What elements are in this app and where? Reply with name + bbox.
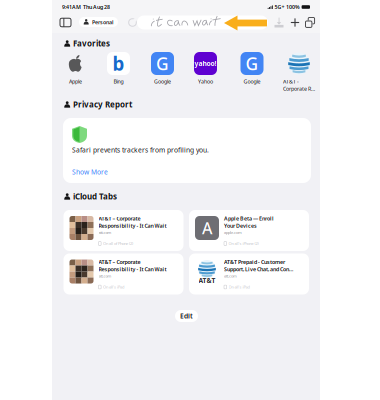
- staticText: apple.com: [224, 230, 242, 235]
- staticText: att.com: [98, 230, 111, 235]
- button[interactable]: New Tab: [290, 17, 300, 27]
- staticText: iCloud Tabs: [73, 191, 117, 202]
- button[interactable]: Show More: [72, 167, 112, 176]
- staticText: Google: [154, 78, 171, 85]
- button[interactable]: Show Sidebar: [59, 17, 72, 28]
- staticText: G: [156, 52, 169, 75]
- staticText: Favorites: [73, 38, 110, 49]
- staticText: Privacy Report: [73, 99, 132, 110]
- button[interactable]: Downloads: [274, 17, 283, 27]
- button[interactable]: Edit: [175, 310, 198, 322]
- staticText: On all of Phone (2): [103, 241, 133, 246]
- button[interactable]: Reload: [128, 18, 137, 27]
- staticText: G: [245, 52, 258, 75]
- staticText: On all's iPad: [229, 284, 250, 290]
- staticText: att.com: [224, 273, 237, 279]
- staticText: On all's iPhone (2): [229, 241, 259, 246]
- button[interactable]: G: [235, 51, 269, 91]
- staticText: b: [112, 51, 124, 76]
- staticText: Edit: [180, 312, 193, 320]
- button[interactable]: AT&T – Corporate Responsibility - It Can…: [63, 210, 183, 251]
- button[interactable]: AT&T – Corporate Responsibility - It Can…: [63, 253, 183, 294]
- button[interactable]: A: [189, 210, 309, 251]
- button[interactable]: AT&T - Corporate R…: [282, 51, 316, 91]
- button[interactable]: G: [145, 51, 179, 91]
- button[interactable]: Safari prevents trackers from profiling …: [63, 118, 311, 183]
- button[interactable]: Personal: [79, 17, 118, 27]
- staticText: yahoo!: [194, 59, 216, 68]
- staticText: AT&T – Corporate Responsibility - It Can…: [98, 215, 166, 229]
- staticText: Apple: [69, 78, 82, 85]
- button[interactable]: Show Tabs: [305, 17, 315, 27]
- staticText: Yahoo: [198, 78, 213, 85]
- button[interactable]: b: [101, 51, 135, 91]
- staticText: Safari prevents trackers from profiling …: [72, 146, 209, 154]
- staticText: 5G+: [274, 3, 284, 11]
- button[interactable]: Apple: [58, 51, 92, 91]
- button[interactable]: yahoo!: [188, 51, 222, 91]
- staticText: AT&T Prepaid - Customer Support, Live Ch…: [224, 258, 293, 273]
- staticText: On all's iPad: [103, 284, 124, 290]
- staticText: Show More: [72, 168, 108, 176]
- button[interactable]: Address and Search: [137, 15, 268, 29]
- staticText: att.com: [98, 273, 111, 279]
- staticText: 9:41AM Thu Aug 28: [62, 3, 110, 11]
- staticText: Apple Beta — Enroll Your Devices: [224, 215, 274, 229]
- staticText: AT&T – Corporate Responsibility - It Can…: [98, 258, 166, 273]
- staticText: A: [202, 217, 212, 239]
- staticText: AT&T: [198, 276, 215, 285]
- staticText: Personal: [92, 19, 114, 26]
- staticText: Bing: [113, 78, 123, 85]
- button[interactable]: AT&T: [189, 253, 309, 294]
- staticText: 100%: [286, 3, 300, 11]
- staticText: AT&T - Corporate R…: [283, 78, 315, 92]
- staticText: Google: [243, 78, 260, 85]
